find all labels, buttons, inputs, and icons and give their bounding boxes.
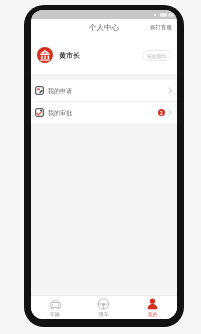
staticText: 用车 [99,311,109,317]
staticText: 个人中心 [89,23,119,32]
staticText: 2 [160,110,163,116]
button[interactable]: 用车 [79,296,128,319]
button[interactable]: 车辆 [31,296,79,319]
staticText: 我的审批 [48,109,72,117]
staticText: 我的 [148,311,158,317]
staticText: 我的申请 [48,87,72,95]
button[interactable]: 安全退出 [142,50,172,61]
button[interactable]: 黄市长 [31,36,177,74]
staticText: 车辆 [50,311,60,317]
button[interactable]: 我的 [128,296,177,319]
staticText: 拨打客服 [150,24,172,31]
button[interactable]: 拨打客服 [150,24,172,31]
staticText: 黄市长 [59,51,80,60]
staticText: 安全退出 [147,53,167,59]
button[interactable]: 我的审批 [31,102,177,123]
button[interactable]: 我的申请 [31,80,177,101]
